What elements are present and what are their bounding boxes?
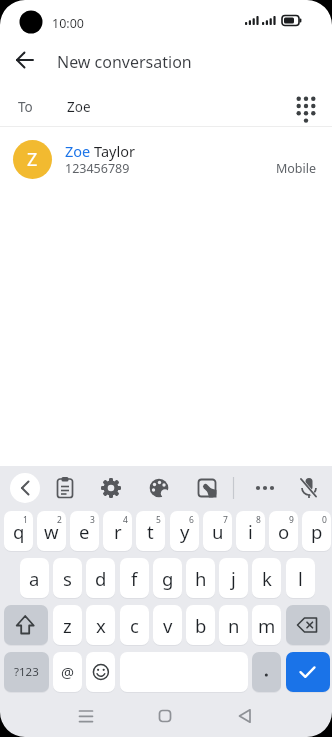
button[interactable] — [70, 702, 102, 730]
button[interactable] — [229, 702, 261, 730]
button[interactable] — [286, 652, 330, 692]
staticText: To — [18, 98, 33, 116]
staticText: 8 — [256, 514, 261, 526]
button[interactable]: k — [252, 558, 281, 598]
staticText: g — [162, 566, 174, 591]
staticText: v — [163, 613, 173, 638]
button[interactable]: w — [37, 511, 66, 551]
button[interactable]: s — [53, 558, 82, 598]
staticText: x — [96, 613, 106, 638]
staticText: 7 — [223, 514, 228, 526]
staticText: @ — [61, 662, 75, 682]
staticText: 3 — [90, 514, 95, 526]
staticText: z — [63, 613, 72, 638]
staticText: s — [63, 566, 72, 591]
button[interactable]: c — [120, 605, 149, 645]
button[interactable]: v — [153, 605, 182, 645]
button[interactable] — [286, 605, 330, 645]
button[interactable] — [290, 90, 322, 124]
staticText: c — [130, 613, 139, 638]
staticText: l — [298, 566, 303, 591]
staticText: f — [131, 566, 138, 591]
staticText: d — [95, 566, 107, 591]
button[interactable]: b — [186, 605, 215, 645]
button[interactable] — [149, 702, 181, 730]
staticText: i — [248, 519, 253, 544]
staticText: u — [212, 519, 224, 544]
staticText: 5 — [156, 514, 161, 526]
button[interactable]: g — [153, 558, 182, 598]
staticText: w — [44, 519, 59, 544]
staticText: Mobile — [275, 160, 316, 177]
button[interactable]: f — [120, 558, 149, 598]
button[interactable]: ?123 — [4, 652, 49, 692]
button[interactable] — [144, 473, 174, 503]
button[interactable]: i — [236, 511, 265, 551]
button[interactable]: e — [70, 511, 99, 551]
button[interactable]: m — [252, 605, 281, 645]
button[interactable]: r — [103, 511, 132, 551]
staticText: k — [262, 566, 272, 591]
button[interactable]: a — [20, 558, 49, 598]
button[interactable] — [86, 652, 115, 692]
button[interactable]: z — [53, 605, 82, 645]
button[interactable]: x — [86, 605, 115, 645]
staticText: New conversation — [57, 51, 192, 73]
button[interactable] — [10, 473, 40, 503]
staticText: h — [195, 566, 207, 591]
button[interactable] — [294, 473, 324, 503]
staticText: a — [29, 566, 40, 591]
staticText: 10:00 — [52, 15, 84, 32]
staticText: ?123 — [14, 664, 39, 680]
button[interactable]: p — [302, 511, 331, 551]
staticText: y — [180, 519, 190, 544]
button[interactable] — [9, 44, 41, 76]
staticText: Zoe — [67, 98, 91, 116]
staticText: r — [114, 519, 122, 544]
staticText: 0 — [322, 514, 327, 526]
staticText: 1 — [23, 514, 28, 526]
button[interactable] — [50, 473, 80, 503]
button[interactable]: h — [186, 558, 215, 598]
button[interactable] — [96, 473, 126, 503]
button[interactable]: Z — [0, 130, 332, 190]
button[interactable] — [250, 473, 280, 503]
staticText: 2 — [57, 514, 62, 526]
staticText: Z — [27, 147, 38, 172]
button[interactable] — [252, 652, 281, 692]
staticText: t — [147, 519, 154, 544]
staticText: q — [13, 519, 25, 544]
staticText: b — [195, 613, 207, 638]
staticText: 9 — [289, 514, 294, 526]
staticText: 4 — [123, 514, 128, 526]
button[interactable]: d — [86, 558, 115, 598]
button[interactable]: q — [4, 511, 33, 551]
button[interactable]: y — [170, 511, 199, 551]
button[interactable]: j — [219, 558, 248, 598]
staticText: n — [228, 613, 240, 638]
button[interactable] — [4, 605, 48, 645]
staticText: Zoe Taylor — [65, 141, 135, 161]
button[interactable]: o — [269, 511, 298, 551]
staticText: o — [278, 519, 290, 544]
button[interactable]: l — [286, 558, 315, 598]
staticText: j — [231, 566, 236, 591]
button[interactable] — [192, 473, 222, 503]
button[interactable]: u — [203, 511, 232, 551]
button[interactable]: n — [219, 605, 248, 645]
staticText: p — [311, 519, 323, 544]
button[interactable]: @ — [53, 652, 82, 692]
staticText: m — [258, 613, 276, 638]
staticText: 123456789 — [65, 160, 130, 177]
button[interactable]: t — [136, 511, 165, 551]
staticText: e — [79, 519, 90, 544]
staticText: 6 — [189, 514, 194, 526]
